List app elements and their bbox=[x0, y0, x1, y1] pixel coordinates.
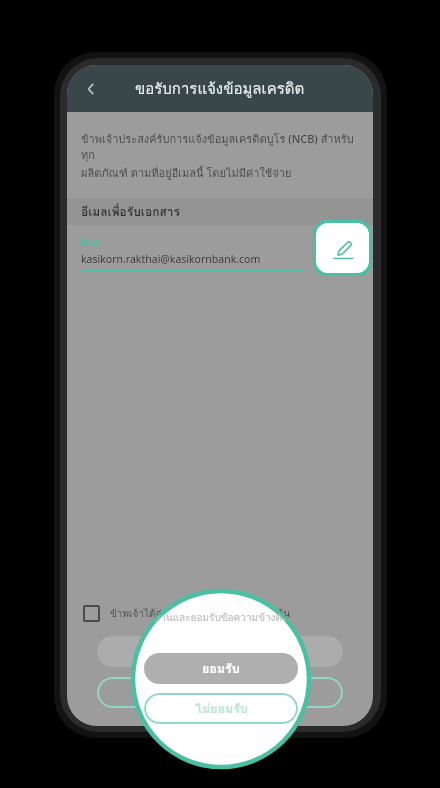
staticText: ยอมรับ bbox=[202, 659, 240, 679]
button[interactable]: ข้าพเจ้าได้อ่านและยอมรับข้อความข้างต้น bbox=[83, 605, 357, 622]
staticText: ยอมรับ bbox=[202, 642, 239, 661]
staticText: อีเมลเพื่อรับเอกสาร bbox=[81, 202, 180, 221]
button[interactable]: Back bbox=[73, 71, 109, 107]
staticText: ข้าพเจ้าได้อ่านและยอมรับข้อความข้างต้น bbox=[110, 606, 291, 622]
button[interactable]: Edit email bbox=[316, 223, 369, 273]
staticText: ไม่ยอมรับ bbox=[195, 683, 246, 702]
staticText: ขอรับการแจ้งข้อมูลเครดิต bbox=[135, 77, 305, 101]
staticText: ไม่ยอมรับ bbox=[195, 699, 248, 719]
staticText: อ่านและยอมรับข้อความข้างต้น bbox=[154, 610, 289, 626]
button[interactable]: ไม่ยอมรับ bbox=[144, 693, 298, 724]
button[interactable]: ยอมรับ bbox=[144, 653, 298, 684]
button[interactable]: ไม่ยอมรับ bbox=[97, 677, 343, 708]
staticText: kasikorn.rakthai@kasikornbank.com bbox=[81, 252, 261, 266]
staticText: อีเมล bbox=[81, 235, 100, 249]
button[interactable]: ยอมรับ bbox=[97, 636, 343, 667]
staticText: ข้าพเจ้าประสงค์รับการแจ้งข้อมูลเครดิตบูโ… bbox=[81, 130, 359, 182]
